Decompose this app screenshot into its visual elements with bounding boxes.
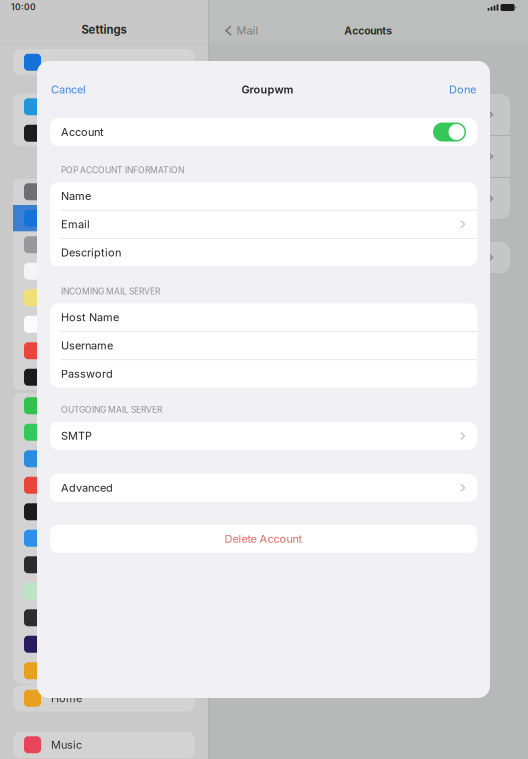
button[interactable]: Settings item [13, 231, 195, 258]
button[interactable]: Settings item [13, 120, 195, 146]
button[interactable]: Settings item [13, 472, 195, 498]
button[interactable]: Settings item [13, 258, 195, 284]
button[interactable]: Cancel [51, 72, 86, 106]
button[interactable]: Settings item [13, 311, 195, 337]
staticText: Mail [236, 24, 258, 37]
staticText: Account [61, 125, 104, 139]
staticText: Accounts [344, 24, 392, 37]
button[interactable]: Settings item [13, 498, 195, 525]
staticText: Email [61, 218, 90, 231]
staticText: Cancel [51, 83, 86, 96]
staticText: Done [449, 83, 476, 96]
button[interactable]: Mail [225, 24, 258, 37]
staticText: Delete Account [224, 532, 302, 545]
button[interactable]: Settings item [13, 657, 195, 684]
button[interactable]: Settings item [13, 525, 195, 551]
staticText: Music [51, 738, 82, 751]
button[interactable]: SMTP [50, 422, 477, 450]
button[interactable]: Settings item [13, 178, 195, 205]
button[interactable]: Music [13, 731, 195, 758]
staticText: Username [61, 339, 113, 352]
staticText: Home [51, 692, 82, 705]
button[interactable]: Home [13, 685, 195, 711]
button[interactable]: Settings item [13, 284, 195, 311]
button[interactable]: Settings item [13, 337, 195, 364]
staticText: SMTP [61, 429, 92, 442]
button[interactable]: Settings item [13, 392, 195, 419]
button[interactable]: Settings item [13, 419, 195, 445]
staticText: Password [61, 367, 113, 380]
staticText: Settings [81, 23, 126, 37]
staticText: OUTGOING MAIL SERVER [61, 404, 162, 415]
staticText: POP ACCOUNT INFORMATION [61, 165, 184, 175]
button[interactable]: Settings item [13, 604, 195, 631]
button[interactable]: Password [50, 360, 477, 387]
button[interactable]: Username [50, 332, 477, 359]
staticText: INCOMING MAIL SERVER [61, 286, 160, 296]
button[interactable]: Description [50, 239, 477, 266]
button[interactable]: Settings item [13, 631, 195, 657]
staticText: Advanced [61, 481, 113, 494]
button[interactable]: Settings item [13, 49, 195, 75]
staticText: Host Name [61, 311, 119, 324]
button[interactable]: Settings item [13, 93, 195, 120]
button[interactable]: Settings item [13, 364, 195, 390]
button[interactable]: Done [449, 72, 476, 106]
button[interactable]: Delete Account [37, 525, 490, 553]
staticText: 10:00 [11, 2, 36, 12]
staticText: Description [61, 246, 121, 259]
button[interactable]: Advanced [50, 474, 477, 502]
button[interactable]: Name [50, 182, 477, 210]
button[interactable]: Settings item [13, 578, 195, 604]
button[interactable]: Email [50, 211, 477, 238]
button[interactable]: Settings item [13, 551, 195, 578]
staticText: Groupwm [241, 83, 293, 96]
button[interactable]: Settings item [13, 205, 195, 231]
button[interactable]: Host Name [50, 304, 477, 331]
staticText: Name [61, 189, 91, 203]
button[interactable]: Settings item [13, 445, 195, 472]
